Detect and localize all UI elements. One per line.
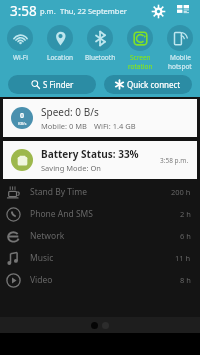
staticText: S Finder — [43, 79, 74, 90]
button[interactable]: Battery Status: 33% — [3, 141, 197, 179]
button[interactable]: Stand By Time — [0, 181, 200, 203]
staticText: Saving Mode: On — [41, 163, 101, 173]
staticText: 200 h — [171, 187, 191, 197]
staticText: 11 h — [175, 253, 191, 263]
button[interactable]: Phone And SMS — [0, 203, 200, 225]
button[interactable]: Wi-Fi — [0, 23, 40, 71]
staticText: Video — [30, 274, 53, 286]
staticText: 8 h — [180, 275, 191, 285]
button[interactable]: Mobile — [160, 23, 200, 71]
button[interactable]: Network — [0, 225, 200, 247]
staticText: Wi-Fi — [13, 53, 28, 62]
button[interactable]: Video — [0, 269, 200, 291]
button[interactable]: S Finder — [8, 75, 96, 94]
button[interactable]: Quick connect — [104, 75, 192, 94]
staticText: Mobile: 0 MB — [41, 121, 87, 131]
staticText: 6 h — [180, 231, 191, 241]
staticText: 3:58 p.m. — [160, 156, 189, 165]
staticText: Speed: 0 B/s — [41, 105, 99, 119]
staticText: Bluetooth — [85, 53, 116, 62]
staticText: 0 — [20, 111, 25, 121]
staticText: Quick connect — [127, 79, 181, 90]
button[interactable]: Location — [40, 23, 80, 71]
staticText: Music — [30, 252, 54, 264]
button[interactable]: Bluetooth — [80, 23, 120, 71]
staticText: Mobile — [170, 53, 191, 62]
button[interactable]: Settings — [148, 1, 168, 21]
button[interactable]: Edit quick settings — [173, 1, 193, 21]
staticText: 2 h — [180, 209, 191, 219]
staticText: KB/s — [18, 121, 27, 126]
staticText: Thu, 22 September — [60, 6, 127, 16]
staticText: rotation — [128, 62, 153, 71]
button[interactable]: 0 — [3, 99, 197, 137]
staticText: Phone And SMS — [30, 208, 93, 220]
staticText: Stand By Time — [30, 186, 87, 198]
staticText: WiFi: 1.4 GB — [94, 121, 136, 131]
button[interactable]: Music — [0, 247, 200, 269]
staticText: hotspot — [168, 62, 192, 71]
staticText: p.m. — [40, 6, 56, 16]
staticText: Location — [47, 53, 74, 62]
staticText: Network — [30, 230, 65, 242]
button[interactable]: Screen — [120, 23, 160, 71]
staticText: Screen — [130, 53, 151, 62]
staticText: Battery Status: 33% — [41, 147, 139, 161]
staticText: 3:58 — [10, 2, 37, 20]
